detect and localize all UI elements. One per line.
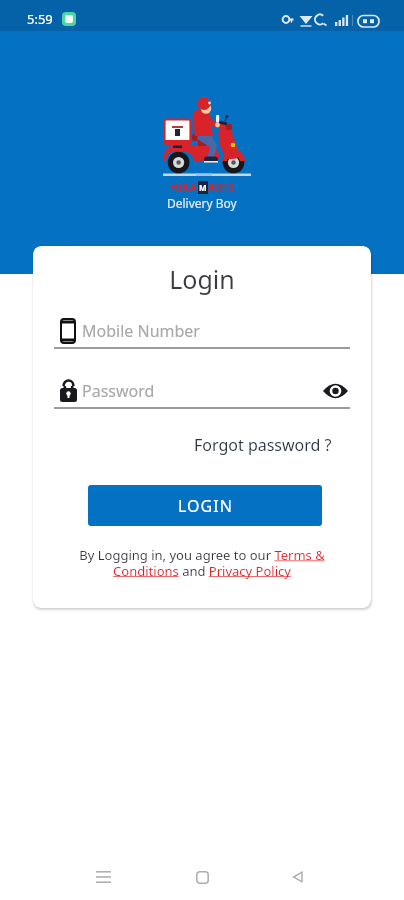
button[interactable]: LOGIN xyxy=(88,485,322,526)
staticText: LOGIN xyxy=(178,495,233,517)
staticText: Delivery Boy xyxy=(167,195,237,211)
button[interactable]: Mobile Number xyxy=(54,318,350,349)
button[interactable]: By Logging in, you agree to our Terms & … xyxy=(68,546,336,579)
staticText: Mobile Number xyxy=(82,320,200,342)
staticText: 5:59 xyxy=(27,10,53,28)
button[interactable] xyxy=(323,382,348,400)
staticText: Login xyxy=(54,262,350,296)
staticText: ARTS xyxy=(208,180,235,194)
button[interactable]: Forgot password ? xyxy=(194,434,332,456)
button[interactable]: Password xyxy=(54,379,350,409)
button[interactable] xyxy=(277,857,317,897)
staticText: Password xyxy=(82,380,155,402)
staticText: HIRA xyxy=(170,180,198,194)
button[interactable] xyxy=(182,857,222,897)
button[interactable] xyxy=(83,857,123,897)
staticText: M xyxy=(199,182,207,193)
